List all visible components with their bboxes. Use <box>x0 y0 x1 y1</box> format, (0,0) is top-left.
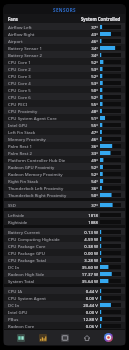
button[interactable]: Browser <box>103 332 114 343</box>
staticText: 52° <box>91 59 98 65</box>
staticText: 33° <box>91 150 98 156</box>
staticText: CPU Computing Highside <box>8 236 60 242</box>
button[interactable]: CPU System Agent <box>4 294 125 301</box>
button[interactable]: Battery Sensor 1 <box>4 44 125 51</box>
staticText: Airport <box>8 38 23 44</box>
button[interactable]: CPU Package Core <box>4 242 125 249</box>
staticText: System Total <box>8 278 35 284</box>
staticText: 54° <box>91 178 98 184</box>
staticText: Battery Sensor 1 <box>8 45 42 51</box>
staticText: 4.59 W <box>84 236 98 242</box>
staticText: CPU IA <box>8 288 22 294</box>
staticText: CPU Core 6 <box>8 94 31 100</box>
staticText: 43° <box>91 31 98 37</box>
staticText: 35.64 W <box>81 278 98 284</box>
staticText: 55° <box>91 122 98 128</box>
button[interactable]: SSD <box>4 201 125 208</box>
button[interactable]: Radeon Core <box>4 322 125 329</box>
button[interactable]: Right Fin Stack <box>4 177 125 184</box>
button[interactable]: Airport <box>4 37 125 44</box>
button[interactable]: Thunderbolt Right Proximity <box>4 191 125 198</box>
staticText: 20.44 V <box>83 302 98 308</box>
staticText: Radeon Memory Proximity <box>8 171 63 177</box>
staticText: CPU PECI <box>8 101 27 107</box>
staticText: Thunderbolt Right Proximity <box>8 192 67 198</box>
button[interactable]: Rightside <box>4 218 125 225</box>
button[interactable]: DC In <box>4 263 125 270</box>
staticText: 0.06 V <box>85 323 98 329</box>
button[interactable]: CPU Core 6 <box>4 93 125 100</box>
button[interactable]: PBus <box>4 315 125 322</box>
button[interactable]: CPU Proximity <box>4 107 125 114</box>
staticText: CPU Package Core <box>8 243 46 249</box>
staticText: 0.00 V <box>85 309 98 315</box>
button[interactable]: Battery Sensor 2 <box>4 51 125 58</box>
staticText: Leftside <box>8 212 25 218</box>
staticText: 52° <box>91 164 98 170</box>
staticText: 0.44 V <box>85 288 98 294</box>
staticText: CPU System Agent <box>8 295 46 301</box>
button[interactable]: CPU Core 2 <box>4 65 125 72</box>
staticText: PBus <box>8 316 19 322</box>
staticText: Radeon Core <box>8 323 35 329</box>
button[interactable]: CPU Core 3 <box>4 72 125 79</box>
staticText: 52° <box>91 73 98 79</box>
staticText: 52° <box>91 94 98 100</box>
staticText: 34° <box>91 52 98 58</box>
button[interactable]: Left Fin Stack <box>4 128 125 135</box>
button[interactable]: System Total <box>4 277 125 284</box>
staticText: Right Fin Stack <box>8 178 39 184</box>
button[interactable]: Palm Rest 1 <box>4 142 125 149</box>
staticText: 51° <box>91 115 98 121</box>
staticText: 1818 rpm <box>81 212 98 218</box>
button[interactable]: Sensors <box>37 332 48 343</box>
button[interactable]: CPU System Agent Core <box>4 114 125 121</box>
staticText: Intel GPU <box>8 122 28 128</box>
button[interactable]: Radeon High Side <box>4 270 125 277</box>
button[interactable]: Radeon GPU Proximity <box>4 163 125 170</box>
button[interactable]: Home <box>81 332 92 343</box>
staticText: 50° <box>91 192 98 198</box>
button[interactable]: Platform Controller Hub Die <box>4 156 125 163</box>
button[interactable]: Leftside <box>4 211 125 218</box>
staticText: Palm Rest 2 <box>8 150 32 156</box>
staticText: 37° <box>91 24 98 30</box>
staticText: CPU Core 1 <box>8 59 31 65</box>
button[interactable]: CPU Core 5 <box>4 86 125 93</box>
staticText: 37° <box>91 202 98 208</box>
staticText: Thunderbolt Left Proximity <box>8 185 64 191</box>
button[interactable]: Palm Rest 2 <box>4 149 125 156</box>
button[interactable]: Intel GPU <box>4 121 125 128</box>
button[interactable]: CPU Core 4 <box>4 79 125 86</box>
staticText: 12.88 V <box>83 316 98 322</box>
button[interactable]: Battery Current <box>4 228 125 235</box>
staticText: 53° <box>91 66 98 72</box>
button[interactable]: CPU Core 1 <box>4 58 125 65</box>
button[interactable]: Airflow Left <box>4 23 125 30</box>
button[interactable]: Intel GPU <box>4 308 125 315</box>
staticText: 52° <box>91 171 98 177</box>
button[interactable]: Airflow Right <box>4 30 125 37</box>
button[interactable]: CPU IA <box>4 287 125 294</box>
staticText: 36° <box>91 143 98 149</box>
staticText: 46° <box>91 38 98 44</box>
staticText: Rightside <box>8 219 28 225</box>
button[interactable]: Terminal <box>59 332 70 343</box>
button[interactable]: Finder <box>15 332 26 343</box>
button[interactable]: CPU Package Total <box>4 256 125 263</box>
button[interactable]: CPU Package GPU <box>4 249 125 256</box>
button[interactable]: Thunderbolt Left Proximity <box>4 184 125 191</box>
button[interactable]: Memory Proximity <box>4 135 125 142</box>
staticText: CPU Proximity <box>8 108 38 114</box>
button[interactable]: CPU PECI <box>4 100 125 107</box>
staticText: System Controlled <box>81 16 121 22</box>
staticText: Radeon High Side <box>8 271 45 277</box>
button[interactable]: CPU Computing Highside <box>4 235 125 242</box>
staticText: 36° <box>91 185 98 191</box>
staticText: DC In <box>8 302 20 308</box>
button[interactable]: DC In <box>4 301 125 308</box>
button[interactable]: Radeon Memory Proximity <box>4 170 125 177</box>
staticText: 46° <box>91 136 98 142</box>
staticText: Memory Proximity <box>8 136 46 142</box>
staticText: 48° <box>91 108 98 114</box>
